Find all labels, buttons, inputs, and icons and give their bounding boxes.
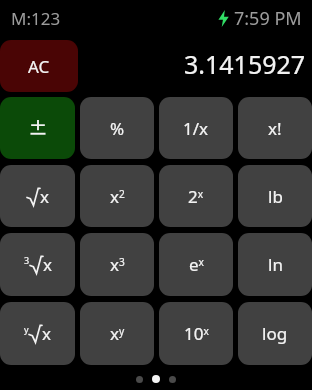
staticText: lb: [268, 185, 283, 208]
button[interactable]: x to the y: [80, 302, 154, 365]
staticText: xy: [110, 322, 125, 345]
button[interactable]: log: [238, 302, 312, 365]
staticText: 3: [24, 254, 30, 266]
button[interactable]: 10 to the x: [159, 302, 233, 365]
staticText: %: [110, 117, 125, 140]
staticText: M:123: [11, 7, 61, 30]
button[interactable]: square root of x: [0, 165, 75, 227]
button[interactable]: x!: [238, 97, 312, 159]
staticText: x: [40, 185, 49, 208]
button[interactable]: plus minus: [0, 97, 75, 159]
staticText: x!: [268, 117, 282, 140]
staticText: x3: [110, 253, 125, 276]
button[interactable]: x cubed: [80, 233, 154, 296]
button[interactable]: cube root of x: [0, 233, 75, 296]
button[interactable]: AC: [0, 40, 78, 92]
staticText: x2: [110, 185, 125, 208]
button[interactable]: x squared: [80, 165, 154, 227]
staticText: 2x: [188, 185, 204, 208]
staticText: ln: [268, 253, 283, 276]
staticText: 1/x: [183, 117, 209, 140]
staticText: log: [262, 322, 288, 345]
staticText: x: [43, 253, 52, 276]
button[interactable]: lb: [238, 165, 312, 227]
staticText: 7:59 PM: [234, 6, 302, 31]
staticText: y: [24, 323, 29, 335]
button[interactable]: e to the x: [159, 233, 233, 296]
staticText: 10x: [184, 322, 209, 345]
staticText: x: [42, 322, 51, 345]
button[interactable]: 2 to the x: [159, 165, 233, 227]
staticText: 3.1415927: [184, 47, 306, 81]
staticText: AC: [28, 55, 50, 78]
button[interactable]: ln: [238, 233, 312, 296]
staticText: ex: [189, 253, 204, 276]
button[interactable]: 1/x: [159, 97, 233, 159]
button[interactable]: y-th root of x: [0, 302, 75, 365]
button[interactable]: %: [80, 97, 154, 159]
